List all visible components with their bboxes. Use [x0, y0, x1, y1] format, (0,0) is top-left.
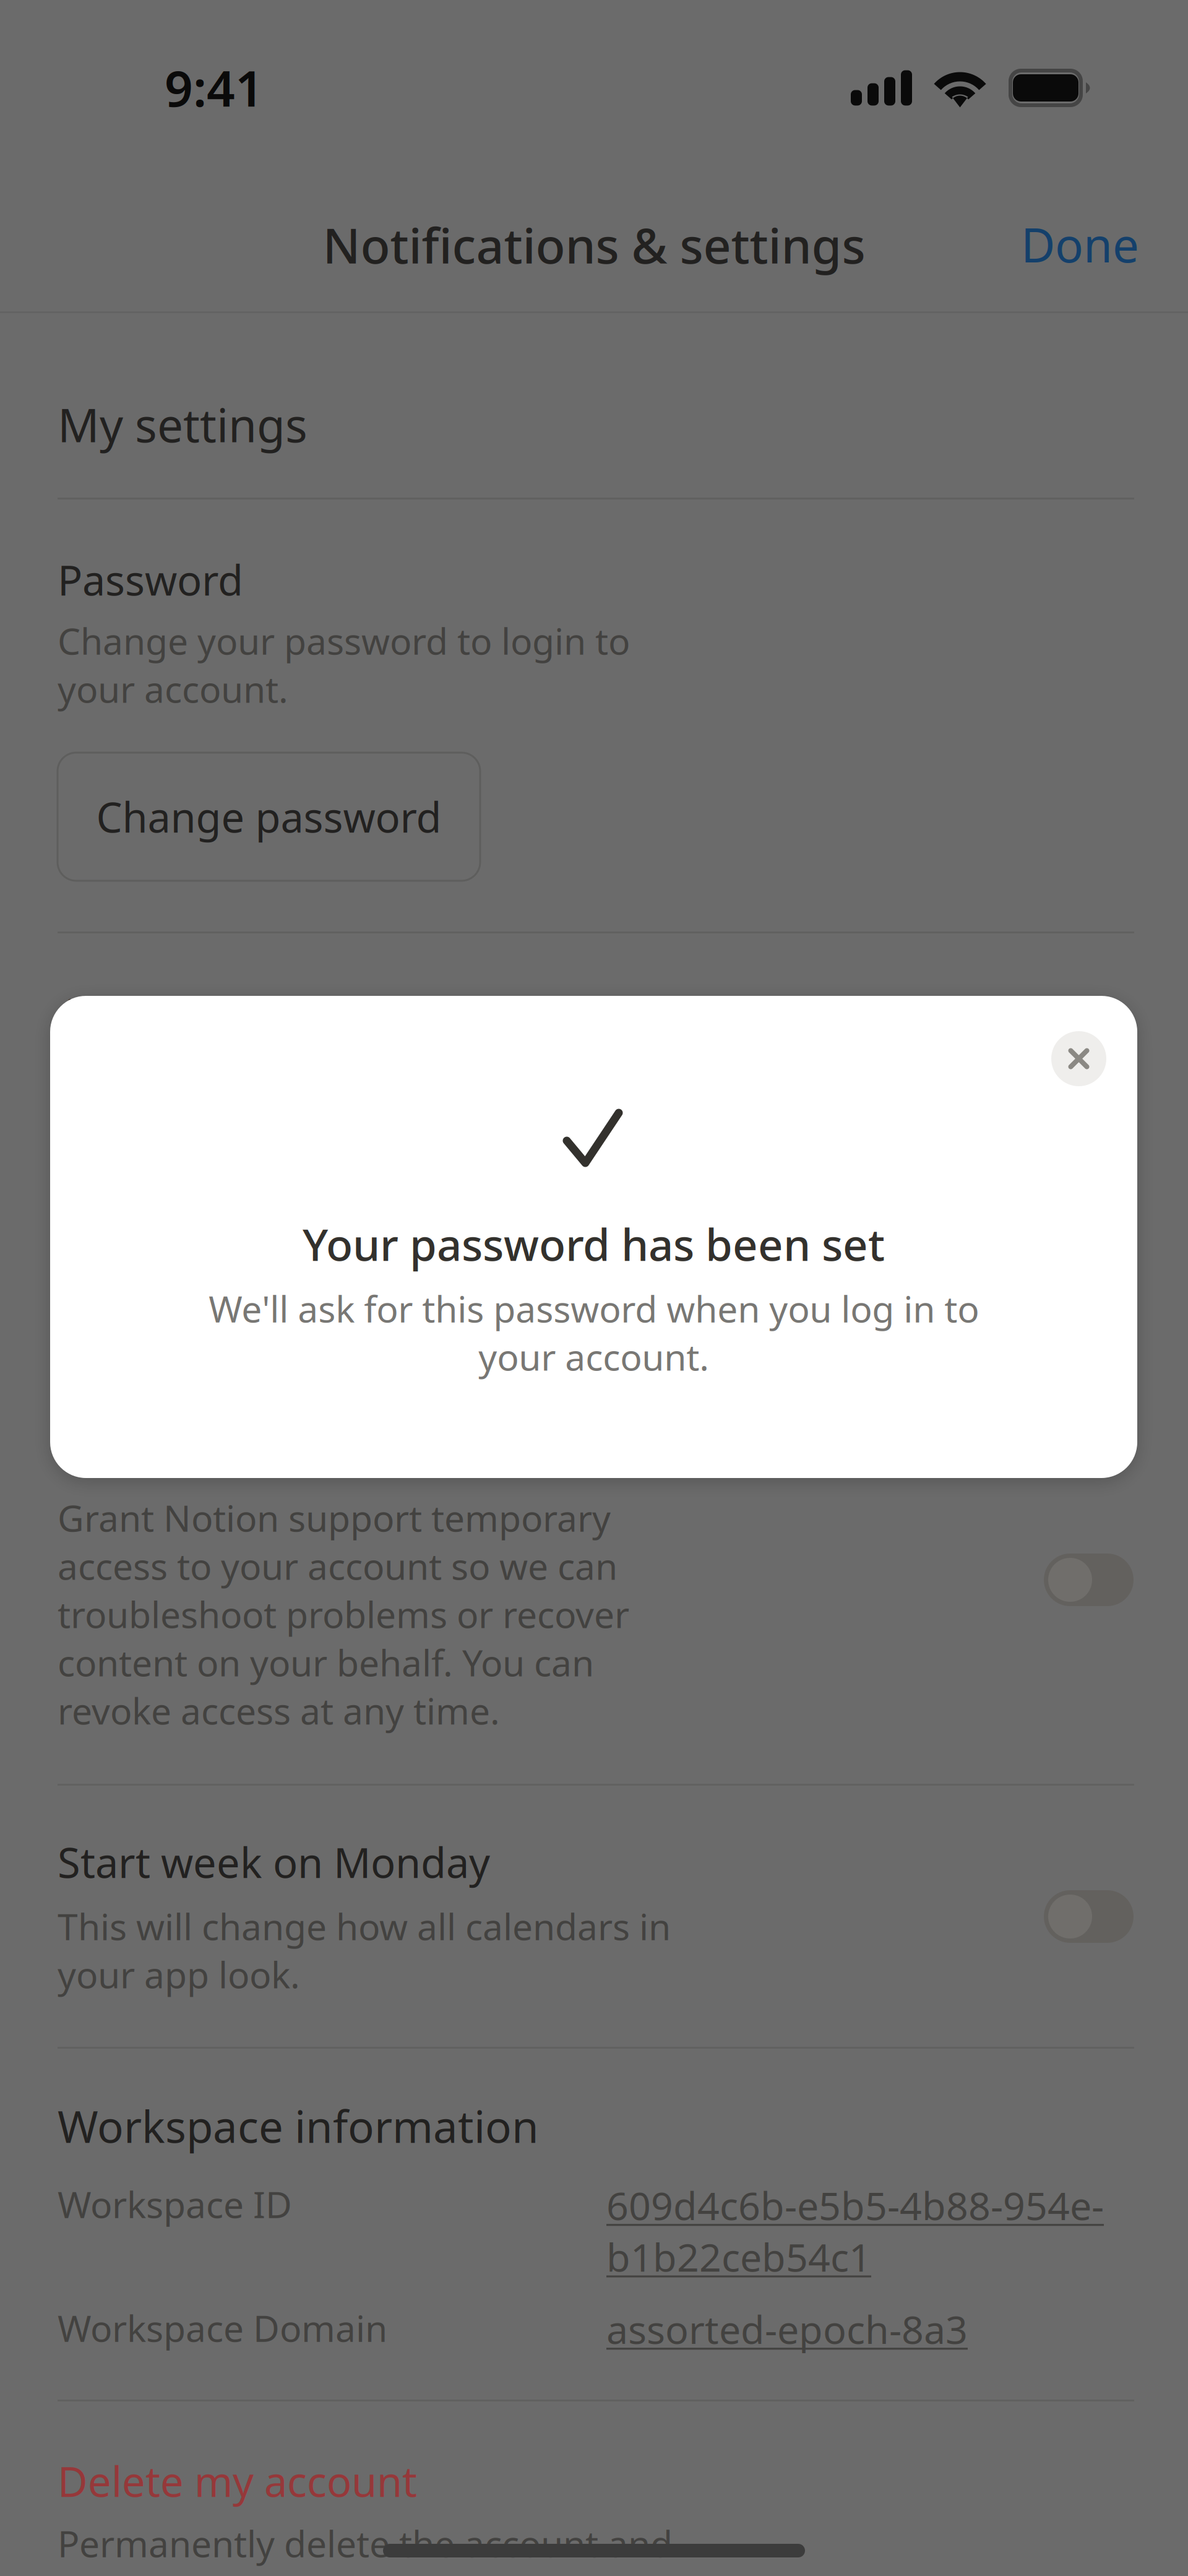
- staticText: Workspace information: [58, 2097, 539, 2155]
- staticText: Choose how Notion looks on this device. …: [58, 1050, 658, 1194]
- staticText: Workspace Domain: [58, 2304, 387, 2352]
- staticText: Change password: [96, 789, 441, 844]
- staticText: We'll ask for this password when you log…: [209, 1284, 979, 1381]
- staticText: My settings: [58, 394, 308, 455]
- button[interactable]: Support access: [1044, 1554, 1134, 1606]
- staticText: 9:41: [165, 54, 264, 120]
- button[interactable]: Close: [1051, 1031, 1106, 1086]
- button[interactable]: System: [58, 1232, 317, 1360]
- staticText: Start week on Monday: [58, 1835, 490, 1889]
- staticText: Grant Notion support temporary access to…: [58, 1493, 629, 1735]
- staticText: Your password has been set: [303, 1215, 885, 1273]
- staticText: Change your password to login to your ac…: [58, 616, 630, 713]
- staticText: 609d4c6b-e5b5-4b88-954e- b1b22ceb54c1: [606, 2179, 1104, 2282]
- button[interactable]: Delete my account: [58, 2453, 417, 2508]
- staticText: Workspace ID: [58, 2180, 292, 2228]
- staticText: Password: [58, 552, 243, 607]
- staticText: System: [117, 1268, 258, 1323]
- button[interactable]: Change password: [58, 753, 480, 881]
- staticText: Notifications & settings: [323, 212, 865, 277]
- staticText: assorted-epoch-8a3: [606, 2303, 968, 2355]
- button[interactable]: assorted-epoch-8a3: [606, 2303, 968, 2355]
- staticText: Appearance: [58, 985, 289, 1040]
- button[interactable]: 609d4c6b-e5b5-4b88-954e- b1b22ceb54c1: [606, 2179, 1104, 2282]
- staticText: Permanently delete the account and: [58, 2519, 673, 2567]
- button[interactable]: Start week on Monday: [1044, 1890, 1134, 1943]
- staticText: Delete my account: [58, 2453, 417, 2508]
- staticText: Done: [1021, 213, 1139, 275]
- staticText: This will change how all calendars in yo…: [58, 1902, 671, 1998]
- button[interactable]: Done: [1010, 207, 1150, 282]
